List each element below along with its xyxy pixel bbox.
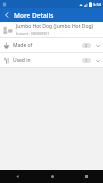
other: Expand Used in bbox=[94, 57, 101, 64]
staticText: Jumbo Hot Dog (Jumbo Hot Dog) bbox=[16, 23, 93, 30]
staticText: More Details bbox=[14, 11, 54, 20]
staticText: Used in bbox=[13, 57, 82, 64]
button[interactable]: Back bbox=[0, 8, 14, 22]
staticText: 1 bbox=[85, 58, 88, 63]
staticText: 5:54 bbox=[93, 2, 101, 7]
button[interactable]: Used in bbox=[0, 53, 103, 67]
staticText: 2 bbox=[85, 43, 88, 48]
button[interactable]: Home bbox=[35, 170, 69, 183]
button[interactable]: Jumbo Hot Dog (Jumbo Hot Dog) bbox=[0, 22, 103, 37]
staticText: Instant : 080008901 bbox=[16, 31, 50, 36]
staticText: Made of bbox=[13, 42, 82, 49]
other: Expand Made of bbox=[94, 42, 101, 49]
button[interactable]: Made of bbox=[0, 38, 103, 52]
button[interactable]: Recent apps bbox=[69, 170, 103, 183]
button[interactable]: Back bbox=[0, 170, 35, 183]
